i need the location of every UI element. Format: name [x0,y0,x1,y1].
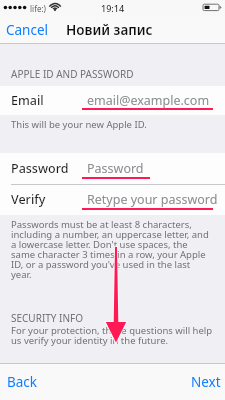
button[interactable]: Verify [0,184,225,215]
staticText: This will be your new Apple ID. [11,118,225,131]
staticText: SECURITY INFO [11,311,84,325]
staticText: Next [191,373,221,391]
staticText: Password [11,160,69,177]
staticText: Новий запис [66,21,153,39]
button[interactable]: Back [0,366,48,398]
staticText: APPLE ID AND PASSWORD [11,67,134,81]
staticText: life:) [30,3,46,14]
button[interactable]: Email [0,86,225,115]
staticText: Verify [11,191,46,208]
staticText: email@example.com [87,92,210,109]
staticText: Cancel [6,21,49,39]
staticText: 19:14 [101,2,125,14]
button[interactable]: Password [0,153,225,184]
staticText: For your protection, these questions wil… [11,324,225,347]
staticText: Passwords must be at least 8 characters,… [11,218,225,281]
staticText: Back [7,373,38,391]
staticText: Email [11,92,44,109]
button[interactable]: Next [181,366,225,398]
staticText: Retype your password [87,191,218,208]
button[interactable]: Cancel [0,16,57,44]
staticText: Password [87,160,144,177]
